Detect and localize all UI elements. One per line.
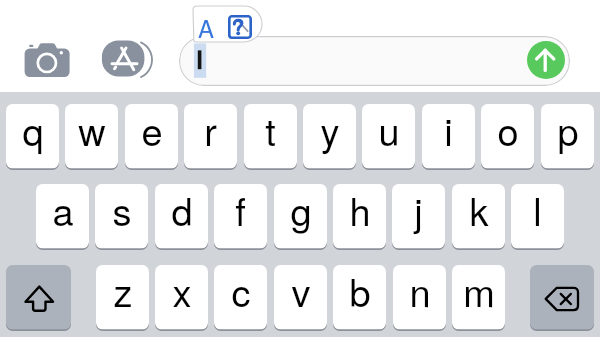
staticText: p [557, 102, 579, 156]
staticText: j [414, 182, 423, 236]
button[interactable]: Shift [6, 265, 71, 331]
staticText: v [291, 263, 311, 317]
button[interactable]: m [452, 265, 505, 331]
button[interactable]: Backspace [530, 265, 594, 331]
button[interactable]: u [362, 104, 415, 170]
button[interactable]: App Store [98, 35, 156, 85]
staticText: c [231, 263, 251, 317]
button[interactable]: e [125, 104, 178, 170]
staticText: a [52, 182, 74, 236]
button[interactable]: t [244, 104, 297, 170]
staticText: f [235, 182, 246, 236]
button[interactable]: p [541, 104, 594, 170]
staticText: o [497, 102, 519, 156]
staticText: k [469, 182, 489, 236]
button[interactable]: l [511, 184, 564, 250]
button[interactable]: a [36, 184, 89, 250]
staticText: y [320, 102, 340, 156]
button[interactable]: i [422, 104, 475, 170]
button[interactable]: r [184, 104, 237, 170]
button[interactable]: k [452, 184, 505, 250]
button[interactable] [179, 36, 570, 86]
button[interactable]: o [481, 104, 534, 170]
staticText: t [265, 102, 276, 156]
staticText: u [378, 102, 400, 156]
staticText: n [409, 263, 431, 317]
button[interactable]: f [214, 184, 267, 250]
staticText: h [349, 182, 371, 236]
button[interactable]: q [6, 104, 59, 170]
staticText: l [533, 182, 542, 236]
button[interactable]: h [333, 184, 386, 250]
button[interactable]: n [393, 265, 446, 331]
button[interactable]: g [274, 184, 327, 250]
button[interactable]: c [214, 265, 267, 331]
staticText: e [141, 102, 163, 156]
button[interactable]: Camera [18, 36, 78, 84]
button[interactable]: w [65, 104, 118, 170]
button[interactable]: v [274, 265, 327, 331]
staticText: g [290, 182, 312, 236]
staticText: x [172, 263, 192, 317]
button[interactable]: y [303, 104, 356, 170]
button[interactable]: z [96, 265, 149, 331]
staticText: m [463, 263, 495, 317]
staticText: w [78, 102, 106, 156]
staticText: z [113, 263, 133, 317]
button[interactable]: j [392, 184, 445, 250]
button[interactable]: d [155, 184, 208, 250]
staticText: q [22, 102, 44, 156]
staticText: i [444, 102, 453, 156]
staticText: b [349, 263, 371, 317]
staticText: s [112, 182, 132, 236]
button[interactable]: b [333, 265, 386, 331]
button[interactable]: x [155, 265, 208, 331]
staticText: A [198, 10, 215, 44]
staticText: r [204, 102, 217, 156]
staticText: d [171, 182, 193, 236]
button[interactable]: s [95, 184, 148, 250]
button[interactable]: Send [527, 41, 565, 79]
